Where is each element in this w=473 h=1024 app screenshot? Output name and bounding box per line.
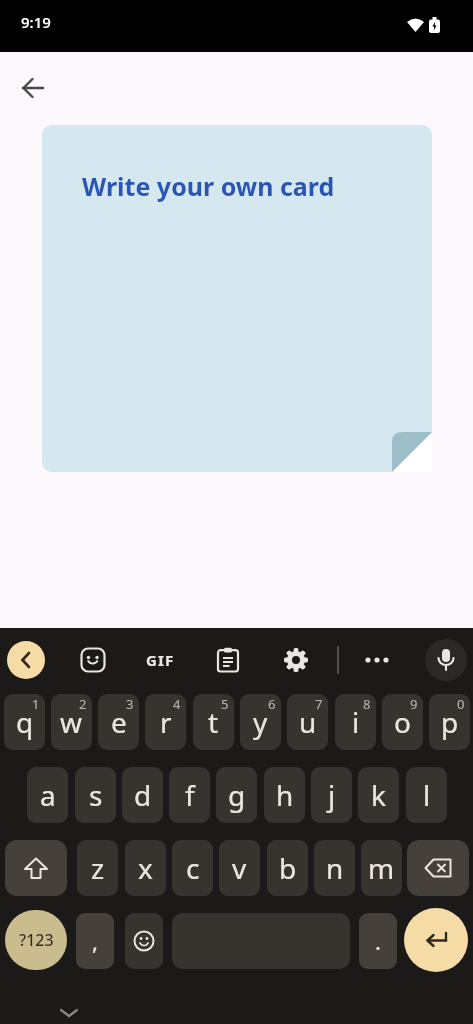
- staticText: g: [228, 776, 246, 814]
- button[interactable]: [80, 647, 106, 673]
- button[interactable]: s: [75, 767, 116, 823]
- button[interactable]: f: [169, 767, 210, 823]
- staticText: Write your own card: [82, 169, 335, 203]
- button[interactable]: a: [27, 767, 68, 823]
- staticText: ,: [92, 926, 98, 956]
- staticText: o: [394, 703, 411, 741]
- staticText: m: [368, 849, 395, 887]
- button[interactable]: [364, 652, 390, 668]
- staticText: n: [326, 849, 344, 887]
- button[interactable]: [216, 647, 240, 673]
- staticText: 1: [32, 695, 40, 713]
- staticText: x: [138, 849, 153, 887]
- staticText: s: [89, 776, 103, 814]
- button[interactable]: [5, 840, 67, 896]
- staticText: 4: [173, 695, 181, 713]
- button[interactable]: t: [193, 694, 234, 750]
- button[interactable]: r: [145, 694, 186, 750]
- staticText: e: [111, 703, 127, 741]
- button[interactable]: d: [122, 767, 163, 823]
- staticText: 3: [126, 695, 134, 713]
- staticText: GIF: [146, 650, 175, 670]
- staticText: j: [328, 776, 336, 814]
- staticText: c: [186, 849, 200, 887]
- button[interactable]: .: [359, 913, 397, 969]
- button[interactable]: i: [335, 694, 376, 750]
- button[interactable]: ,: [76, 913, 114, 969]
- button[interactable]: m: [361, 840, 402, 896]
- button[interactable]: x: [125, 840, 166, 896]
- staticText: z: [91, 849, 105, 887]
- button[interactable]: [58, 1006, 80, 1020]
- staticText: 9: [410, 695, 418, 713]
- button[interactable]: ?123: [5, 910, 67, 970]
- staticText: a: [40, 776, 56, 814]
- button[interactable]: [42, 125, 432, 472]
- staticText: 9:19: [21, 12, 51, 32]
- staticText: p: [441, 703, 459, 741]
- button[interactable]: n: [314, 840, 355, 896]
- button[interactable]: [407, 840, 469, 896]
- staticText: 5: [221, 695, 229, 713]
- staticText: y: [253, 703, 268, 741]
- staticText: r: [160, 703, 172, 741]
- button[interactable]: j: [311, 767, 352, 823]
- button[interactable]: h: [264, 767, 305, 823]
- button[interactable]: y: [240, 694, 281, 750]
- button[interactable]: [125, 913, 163, 969]
- button[interactable]: [7, 641, 45, 679]
- staticText: b: [279, 849, 297, 887]
- button[interactable]: [22, 77, 44, 99]
- staticText: i: [352, 703, 360, 741]
- button[interactable]: o: [382, 694, 423, 750]
- button[interactable]: c: [172, 840, 213, 896]
- button[interactable]: q: [4, 694, 45, 750]
- staticText: d: [134, 776, 152, 814]
- button[interactable]: e: [98, 694, 139, 750]
- staticText: t: [208, 703, 219, 741]
- button[interactable]: w: [51, 694, 92, 750]
- staticText: v: [232, 849, 247, 887]
- staticText: q: [16, 703, 34, 741]
- staticText: ?123: [19, 929, 54, 951]
- staticText: w: [60, 703, 83, 741]
- button[interactable]: [283, 647, 309, 673]
- button[interactable]: g: [216, 767, 257, 823]
- staticText: k: [371, 776, 386, 814]
- button[interactable]: [425, 639, 467, 681]
- staticText: u: [299, 703, 317, 741]
- button[interactable]: [404, 908, 468, 972]
- staticText: 8: [363, 695, 371, 713]
- button[interactable]: p: [429, 694, 470, 750]
- button[interactable]: l: [406, 767, 447, 823]
- button[interactable]: u: [287, 694, 328, 750]
- button[interactable]: GIF: [140, 648, 180, 672]
- button[interactable]: z: [77, 840, 118, 896]
- staticText: h: [276, 776, 294, 814]
- staticText: 2: [79, 695, 87, 713]
- staticText: l: [423, 776, 431, 814]
- staticText: .: [375, 926, 381, 956]
- button[interactable]: b: [267, 840, 308, 896]
- button[interactable]: v: [219, 840, 260, 896]
- button[interactable]: k: [358, 767, 399, 823]
- staticText: f: [185, 776, 195, 814]
- staticText: 0: [457, 695, 465, 713]
- staticText: 7: [315, 695, 323, 713]
- staticText: 6: [268, 695, 276, 713]
